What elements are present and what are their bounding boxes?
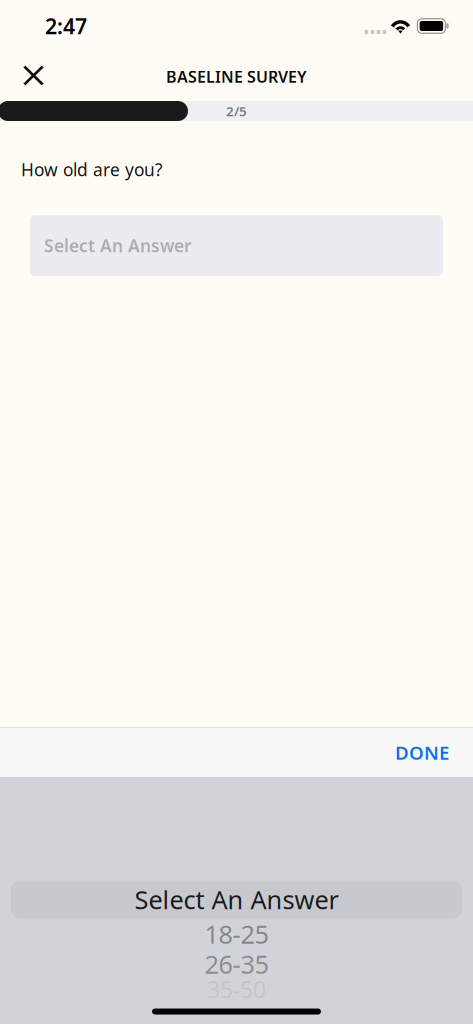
button[interactable]: DONE	[371, 726, 473, 779]
staticText: 18-25	[204, 917, 268, 951]
button[interactable]: Select An Answer	[30, 215, 443, 276]
button[interactable]: Close	[0, 56, 61, 96]
staticText: 2:47	[45, 12, 87, 40]
staticText: Select An Answer	[44, 234, 192, 257]
staticText: 26-35	[204, 947, 268, 981]
staticText: How old are you?	[21, 158, 163, 181]
staticText: BASELINE SURVEY	[166, 66, 307, 87]
staticText: 2/5	[226, 102, 247, 120]
staticText: 35-50	[207, 974, 266, 1004]
staticText: Select An Answer	[134, 883, 338, 916]
staticText: DONE	[395, 740, 449, 765]
